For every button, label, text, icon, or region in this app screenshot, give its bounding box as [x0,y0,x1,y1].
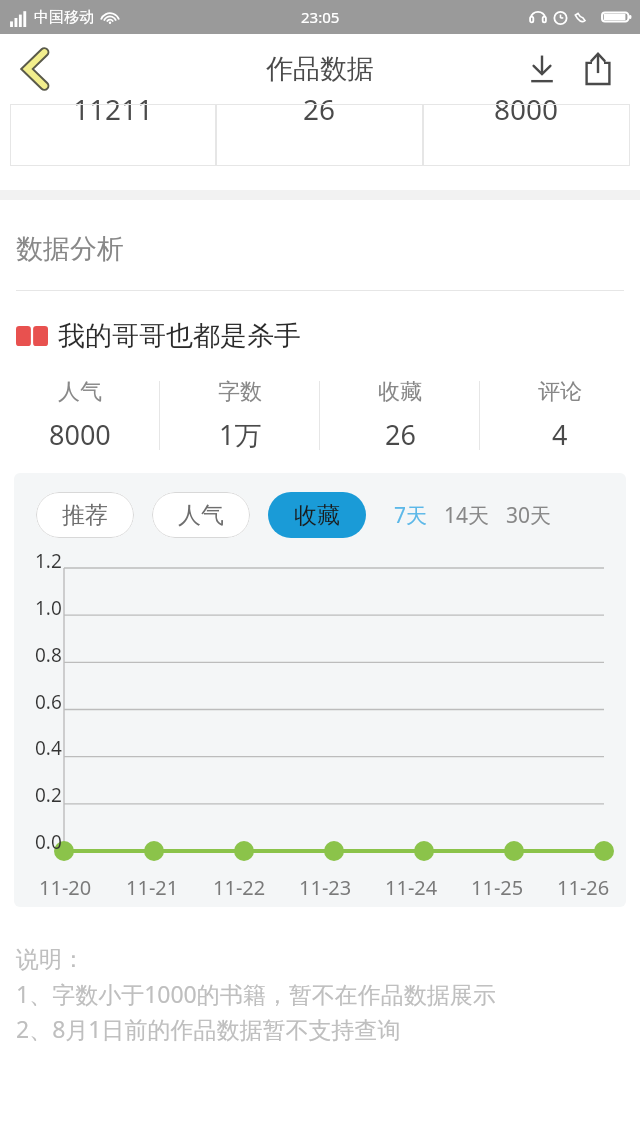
staticText: 11-26 [557,874,610,901]
staticText: 人气 [58,378,102,406]
staticText: 0.0 [35,829,62,855]
staticText: 8000 [49,416,111,453]
button[interactable]: 8000 [423,104,630,166]
staticText: 11-25 [471,874,524,901]
staticText: 11-21 [126,874,179,901]
button[interactable]: 26 [216,104,423,166]
staticText: 0.2 [35,782,62,808]
button[interactable]: Back [0,34,72,104]
button[interactable]: 7天 [394,501,428,530]
staticText: 0.8 [35,642,62,668]
staticText: 说明： [16,945,85,974]
staticText: 中国移动 [34,8,94,27]
staticText: 26 [303,90,336,128]
staticText: 11-20 [39,874,92,901]
staticText: 评论 [538,378,582,406]
staticText: 1.2 [35,548,62,574]
staticText: 收藏 [378,378,422,406]
staticText: 11211 [73,90,154,128]
button[interactable]: 14天 [444,501,490,530]
staticText: 8000 [494,90,559,128]
button[interactable]: Download [514,38,570,100]
button[interactable]: 字数 [160,371,320,459]
staticText: 26 [385,416,416,453]
button[interactable]: 我的哥哥也都是杀手 [16,319,640,353]
button[interactable]: Share [570,38,626,100]
staticText: 4 [552,416,568,453]
staticText: 0.6 [35,689,62,715]
staticText: 字数 [218,378,262,406]
staticText: 2、8月1日前的作品数据暂不支持查询 [16,1013,401,1044]
staticText: 数据分析 [16,232,124,266]
staticText: 我的哥哥也都是杀手 [58,319,301,353]
button[interactable]: 推荐 [36,492,134,538]
staticText: 11-23 [299,874,352,901]
button[interactable]: 收藏 [320,371,480,459]
staticText: 0.4 [35,735,62,761]
button[interactable]: 人气 [152,492,250,538]
button[interactable]: 人气 [0,371,160,459]
staticText: 11-22 [213,874,266,901]
staticText: 1.0 [35,595,62,621]
staticText: 1、字数小于1000的书籍，暂不在作品数据展示 [16,978,496,1009]
button[interactable]: 30天 [506,501,552,530]
staticText: 23:05 [301,7,340,27]
staticText: 作品数据 [266,52,374,86]
staticText: 人气 [178,501,224,530]
button[interactable]: 收藏 [268,492,366,538]
staticText: 1万 [219,416,262,453]
button[interactable]: 11211 [10,104,216,166]
staticText: 11-24 [385,874,438,901]
staticText: 推荐 [62,501,108,530]
staticText: 收藏 [294,501,340,530]
button[interactable]: 评论 [480,371,640,459]
